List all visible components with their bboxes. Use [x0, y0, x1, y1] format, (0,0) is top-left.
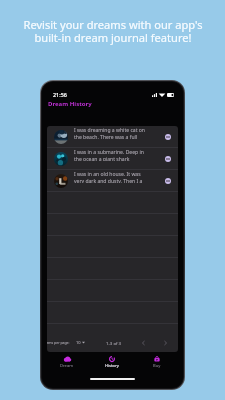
staticText: Items per page:: [47, 340, 70, 345]
button[interactable]: Previous page: [139, 338, 148, 347]
staticText: 10: [76, 340, 81, 345]
staticText: Dream: [60, 363, 74, 369]
staticText: Revisit your dreams with our app's built…: [23, 17, 203, 45]
button[interactable]: Items per page:: [47, 340, 70, 345]
button[interactable]: 10: [76, 340, 85, 345]
button[interactable]: I was in an old house. It was very dark …: [47, 170, 178, 192]
staticText: I was in a submarine. Deep in the ocean …: [74, 149, 144, 161]
staticText: I was in an old house. It was very dark …: [74, 171, 143, 183]
button[interactable]: I was in a submarine. Deep in the ocean …: [47, 148, 178, 170]
staticText: I was dreaming a white cat on the beach.…: [74, 127, 145, 139]
button[interactable]: Delete dream: [165, 156, 171, 162]
button[interactable]: Delete dream: [165, 178, 171, 184]
staticText: Buy: [153, 363, 161, 369]
button[interactable]: Delete dream: [165, 134, 171, 140]
staticText: 1-3 of 3: [106, 340, 122, 346]
button[interactable]: Buy: [144, 354, 170, 369]
staticText: 21:56: [53, 91, 67, 98]
button[interactable]: History: [99, 354, 125, 369]
button[interactable]: Next page: [161, 338, 170, 347]
button[interactable]: I was dreaming a white cat on the beach.…: [47, 126, 178, 148]
button[interactable]: Dream History: [48, 100, 92, 108]
button[interactable]: Dream: [54, 354, 80, 369]
staticText: Dream History: [48, 100, 92, 108]
staticText: History: [105, 363, 119, 369]
